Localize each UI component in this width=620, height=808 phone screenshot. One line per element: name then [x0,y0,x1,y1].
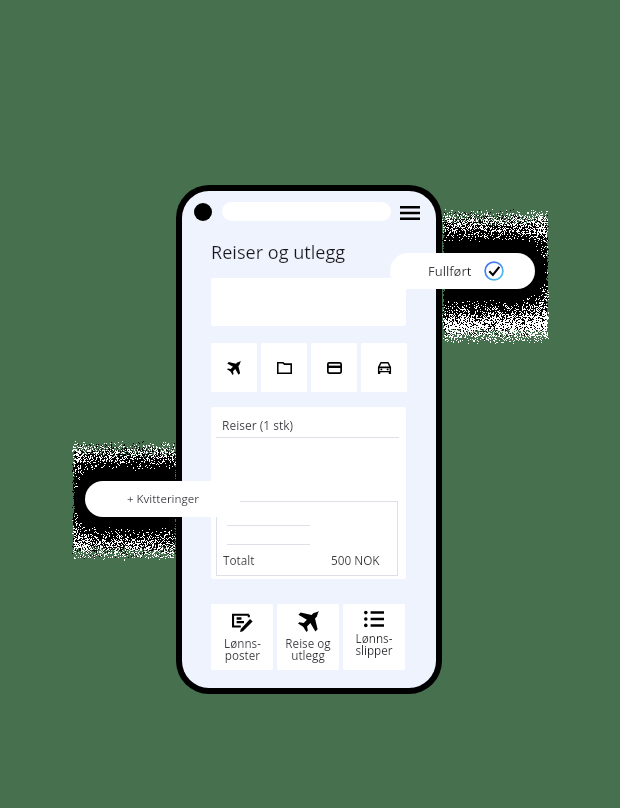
button[interactable]: Travel [211,343,257,392]
staticText: Totalt [223,552,255,568]
staticText: Reise og utlegg [285,635,331,663]
button[interactable]: Lønns- poster [211,604,273,670]
button[interactable]: Lønns- slipper [343,604,405,670]
staticText: 500 NOK [331,552,380,568]
button[interactable]: Menu [397,200,423,226]
staticText: Reiser og utlegg [211,240,346,265]
button[interactable]: Reise og utlegg [277,604,339,670]
staticText: Reiser (1 stk) [222,417,294,433]
button[interactable]: Files [261,343,307,392]
staticText: Lønns- slipper [355,630,393,658]
staticText: + Kvitteringer [127,491,199,507]
button[interactable]: Car [361,343,407,392]
staticText: Fullført [428,262,472,280]
staticText: Lønns- poster [224,635,261,663]
button[interactable]: + Kvitteringer [85,481,240,517]
button[interactable]: Card [311,343,357,392]
button[interactable]: Fullført [390,253,535,289]
